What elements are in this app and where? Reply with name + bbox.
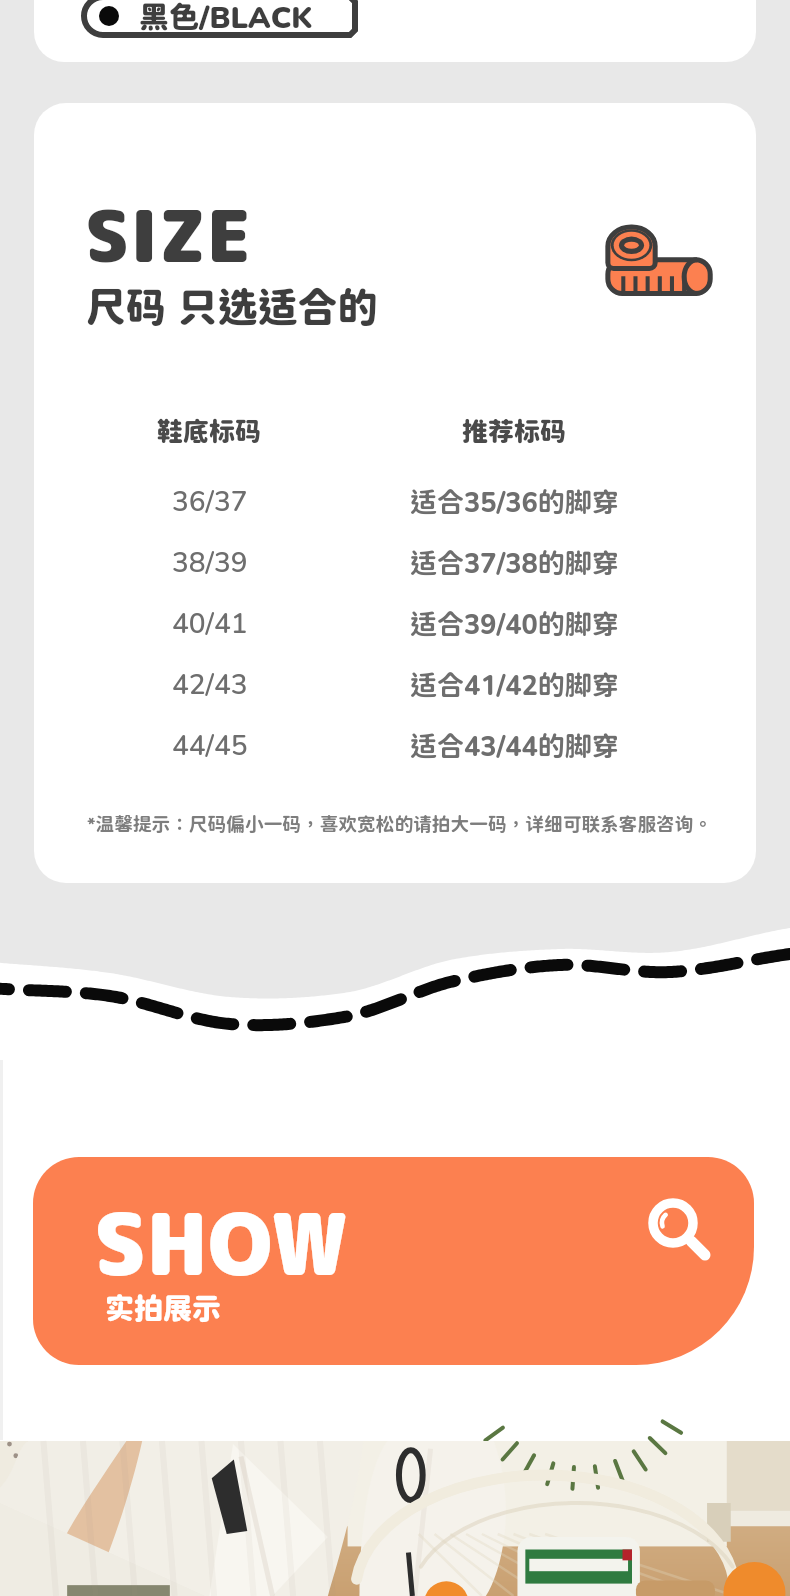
staticText: 尺码 只选适合的 (86, 283, 378, 330)
staticText: 实拍展示 (105, 1291, 222, 1325)
staticText: 黑色/BLACK (139, 0, 313, 34)
staticText: 36/37 (172, 483, 248, 521)
staticText: 推荐标码 (462, 416, 567, 447)
staticText: 适合37/38的脚穿 (410, 547, 619, 579)
staticText: 适合41/42的脚穿 (410, 669, 619, 701)
staticText: 鞋底标码 (157, 416, 262, 447)
staticText: 40/41 (172, 605, 248, 643)
staticText: 42/43 (172, 666, 248, 704)
button[interactable]: SHOW (33, 1157, 754, 1365)
staticText: 适合43/44的脚穿 (410, 730, 619, 762)
other: Search (633, 1187, 743, 1297)
staticText: *温馨提示：尺码偏小一码，喜欢宽松的请拍大一码，详细可联系客服咨询。 (87, 813, 713, 835)
staticText: 44/45 (172, 727, 248, 765)
staticText: 适合35/36的脚穿 (410, 486, 619, 518)
staticText: 38/39 (172, 544, 248, 582)
staticText: SHOW (94, 1184, 348, 1303)
staticText: SIZE (85, 185, 253, 285)
staticText: 适合39/40的脚穿 (410, 608, 619, 640)
button[interactable]: 黑色/BLACK (81, 0, 358, 38)
